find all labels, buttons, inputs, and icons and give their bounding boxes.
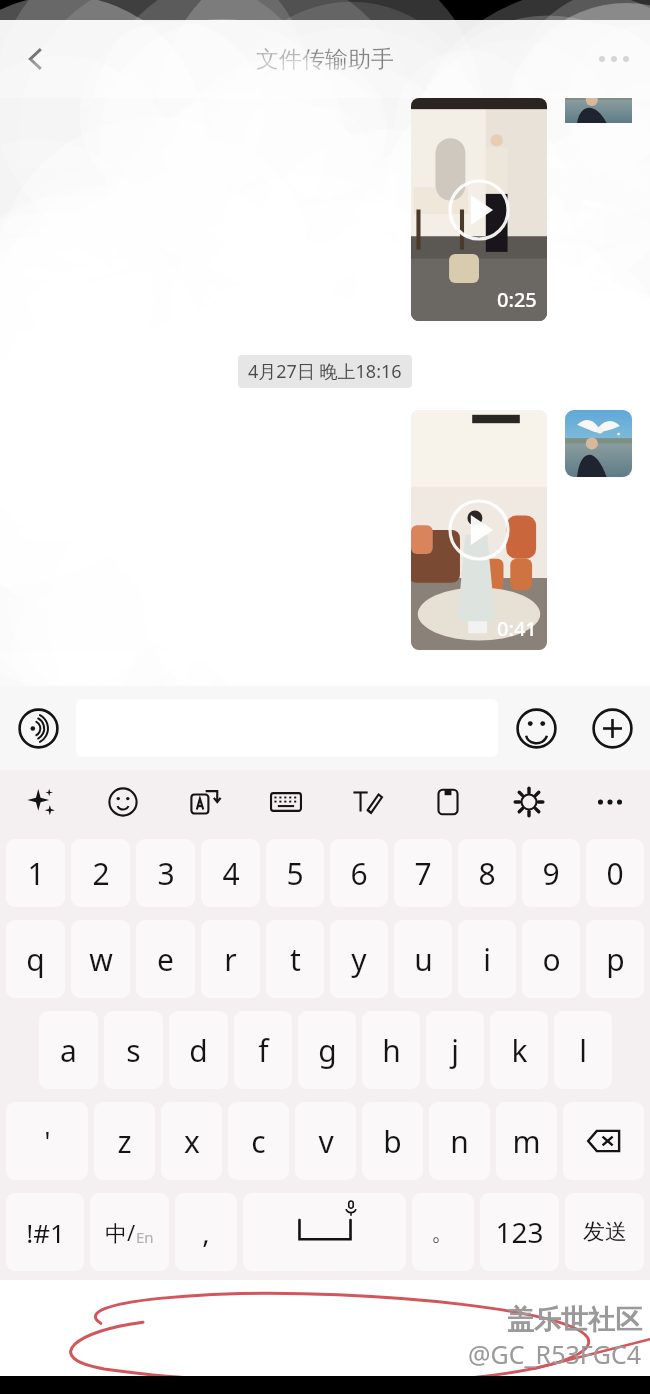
staticText: e — [157, 939, 174, 980]
button[interactable]: l — [554, 1011, 612, 1089]
staticText: c — [251, 1121, 266, 1162]
button[interactable]: Play video — [411, 410, 547, 650]
staticText: k — [511, 1030, 528, 1071]
button[interactable]: ' — [6, 1102, 88, 1180]
button[interactable]: More functions — [574, 690, 650, 766]
button[interactable]: 123 — [480, 1193, 559, 1271]
staticText: 8 — [478, 853, 496, 894]
button[interactable]: 5 — [266, 839, 324, 907]
button[interactable]: Translate — [164, 770, 245, 834]
button[interactable]: Avatar — [565, 98, 632, 144]
staticText: En — [136, 1227, 154, 1247]
staticText: m — [512, 1121, 541, 1162]
button[interactable]: r — [201, 920, 260, 998]
button[interactable]: Clipboard — [407, 770, 488, 834]
button[interactable]: x — [161, 1102, 222, 1180]
button[interactable]: k — [490, 1011, 548, 1089]
staticText: @GC_R53FGC4 — [468, 1337, 642, 1371]
button[interactable]: h — [362, 1011, 420, 1089]
button[interactable]: w — [71, 920, 130, 998]
button[interactable]: 3 — [136, 839, 195, 907]
button[interactable]: Space — [243, 1193, 406, 1271]
staticText: z — [117, 1121, 132, 1162]
button[interactable]: j — [426, 1011, 484, 1089]
button[interactable]: Play video — [411, 98, 547, 321]
button[interactable]: g — [298, 1011, 356, 1089]
staticText: 4 — [222, 853, 240, 894]
button[interactable]: s — [104, 1011, 163, 1089]
button[interactable]: Voice input — [0, 690, 76, 766]
staticText: h — [382, 1030, 401, 1071]
button[interactable]: AI assist — [0, 770, 82, 834]
button[interactable]: 7 — [394, 839, 452, 907]
button[interactable]: z — [94, 1102, 155, 1180]
button[interactable]: d — [169, 1011, 228, 1089]
staticText: 中/ — [105, 1217, 136, 1247]
button[interactable]: More — [569, 770, 650, 834]
staticText: d — [189, 1030, 208, 1071]
button[interactable]: 2 — [71, 839, 130, 907]
button[interactable]: f — [234, 1011, 292, 1089]
staticText: w — [89, 939, 113, 980]
button[interactable]: i — [458, 920, 516, 998]
button[interactable]: More options — [578, 20, 650, 98]
staticText: , — [202, 1213, 210, 1251]
button[interactable]: c — [228, 1102, 289, 1180]
button[interactable]: 8 — [458, 839, 516, 907]
button[interactable]: Backspace — [563, 1102, 644, 1180]
staticText: g — [318, 1030, 337, 1071]
button[interactable]: 6 — [330, 839, 388, 907]
button[interactable]: v — [295, 1102, 356, 1180]
button[interactable]: t — [266, 920, 324, 998]
button[interactable]: Emoji — [498, 690, 574, 766]
staticText: t — [290, 939, 301, 980]
button[interactable]: 。 — [412, 1193, 474, 1271]
staticText: x — [184, 1121, 200, 1162]
button[interactable]: 4 — [201, 839, 260, 907]
button[interactable]: 发送 — [565, 1193, 644, 1271]
staticText: 2 — [92, 853, 110, 894]
button[interactable]: Avatar — [565, 410, 632, 477]
staticText: v — [318, 1121, 334, 1162]
button[interactable]: 中/ — [90, 1193, 169, 1271]
staticText: !#1 — [26, 1215, 65, 1250]
staticText: f — [258, 1030, 269, 1071]
staticText: 3 — [157, 853, 175, 894]
button[interactable]: y — [330, 920, 388, 998]
button[interactable]: m — [496, 1102, 557, 1180]
button[interactable]: a — [39, 1011, 98, 1089]
staticText: o — [542, 939, 561, 980]
button[interactable]: 0 — [586, 839, 644, 907]
button[interactable]: e — [136, 920, 195, 998]
button[interactable]: o — [522, 920, 580, 998]
button[interactable]: p — [586, 920, 644, 998]
staticText: 123 — [495, 1213, 544, 1251]
staticText: 。 — [431, 1217, 455, 1247]
button[interactable]: 9 — [522, 839, 580, 907]
staticText: 1 — [27, 853, 45, 894]
staticText: n — [450, 1121, 469, 1162]
staticText: a — [60, 1030, 77, 1071]
staticText: 0:41 — [497, 615, 537, 642]
staticText: 5 — [286, 853, 304, 894]
staticText: i — [483, 939, 491, 980]
button[interactable]: Keyboard layout — [245, 770, 326, 834]
button[interactable]: !#1 — [6, 1193, 84, 1271]
button[interactable]: b — [362, 1102, 423, 1180]
button[interactable]: u — [394, 920, 452, 998]
button[interactable]: n — [429, 1102, 490, 1180]
staticText: 0 — [606, 853, 624, 894]
staticText: s — [126, 1030, 141, 1071]
staticText: 文件传输助手 — [256, 45, 394, 74]
button[interactable]: 1 — [6, 839, 65, 907]
button[interactable]: Emoji — [82, 770, 164, 834]
staticText: u — [414, 939, 433, 980]
button[interactable]: , — [175, 1193, 237, 1271]
button[interactable]: Handwriting — [326, 770, 407, 834]
button[interactable]: q — [6, 920, 65, 998]
button[interactable]: Settings — [488, 770, 569, 834]
staticText: l — [579, 1030, 587, 1071]
button[interactable]: Back — [0, 20, 72, 98]
staticText: 7 — [414, 853, 432, 894]
